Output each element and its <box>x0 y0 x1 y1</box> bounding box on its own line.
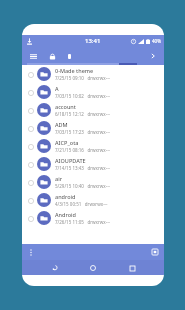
button[interactable]: Menu <box>27 50 39 62</box>
staticText: A <box>55 85 59 92</box>
staticText: ADM <box>55 121 68 128</box>
staticText: AIOUPDATE <box>55 157 86 164</box>
staticText: 6/18/15 12:12 drwxrwx--- <box>55 111 111 117</box>
staticText: AICP_ota <box>55 139 79 146</box>
button[interactable]: Recents <box>126 262 138 274</box>
staticText: account <box>55 103 76 110</box>
staticText: 40% <box>152 38 161 44</box>
button[interactable]: Select <box>22 119 164 137</box>
staticText: 7/03/15 17:23 drwxrwx--- <box>55 129 111 135</box>
staticText: air <box>55 175 62 182</box>
button[interactable]: Select <box>25 195 36 206</box>
button[interactable]: Select <box>25 177 36 188</box>
button[interactable]: Select <box>22 137 164 155</box>
button[interactable]: Select <box>22 209 164 227</box>
staticText: 7/21/15 08:16 drwxrwx--- <box>55 147 111 153</box>
button[interactable]: Select <box>22 155 164 173</box>
staticText: 0-Made theme <box>55 67 94 74</box>
staticText: 13:41 <box>85 37 101 45</box>
staticText: 7/14/15 13:43 drwxrwx--- <box>55 165 111 171</box>
button[interactable]: Select <box>25 69 36 80</box>
button[interactable]: Select <box>25 105 36 116</box>
button[interactable]: Select <box>25 87 36 98</box>
staticText: 4/3/15 00:51 drwxrwx--- <box>55 201 108 207</box>
button[interactable]: Select <box>25 213 36 224</box>
button[interactable]: Select <box>22 173 164 191</box>
button[interactable]: Select <box>25 141 36 152</box>
button[interactable]: Forward <box>147 50 159 62</box>
button[interactable]: Select <box>22 191 164 209</box>
staticText: Android <box>55 211 76 218</box>
button[interactable]: Select <box>22 101 164 119</box>
staticText: 7/25/15 09:10 drwxrwx--- <box>55 75 111 81</box>
button[interactable]: Select <box>25 123 36 134</box>
staticText: 5/29/15 10:40 drwxrwx--- <box>55 183 111 189</box>
button[interactable]: Select <box>22 65 164 83</box>
button[interactable]: Select <box>25 159 36 170</box>
button[interactable]: Storage <box>64 51 74 61</box>
button[interactable]: View options <box>150 247 160 257</box>
staticText: 7/26/15 11:05 drwxrwx--- <box>55 219 111 225</box>
button[interactable]: Select <box>22 83 164 101</box>
button[interactable]: Lock <box>46 50 58 62</box>
button[interactable]: More options <box>26 247 36 257</box>
button[interactable]: Home <box>87 262 99 274</box>
staticText: 7/03/15 10:02 drwxrwx--- <box>55 93 111 99</box>
button[interactable]: Back <box>49 262 61 274</box>
staticText: android <box>55 193 76 200</box>
